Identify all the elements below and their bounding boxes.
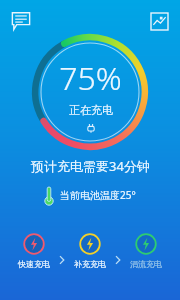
staticText: 快速充电 xyxy=(18,259,50,269)
staticText: 涓流充电 xyxy=(130,259,162,269)
button[interactable]: 快速充电 xyxy=(11,231,57,271)
staticText: 补充充电 xyxy=(74,259,106,269)
button[interactable]: 涓流充电 xyxy=(123,231,169,271)
staticText: 预计充电需要34分钟 xyxy=(31,157,150,175)
staticText: 75% xyxy=(59,56,122,100)
staticText: 当前电池温度25° xyxy=(60,188,136,202)
button[interactable]: 补充充电 xyxy=(67,231,113,271)
staticText: 正在充电 xyxy=(69,103,113,117)
button[interactable]: Statistics xyxy=(146,8,172,34)
button[interactable]: Messages xyxy=(8,8,34,34)
